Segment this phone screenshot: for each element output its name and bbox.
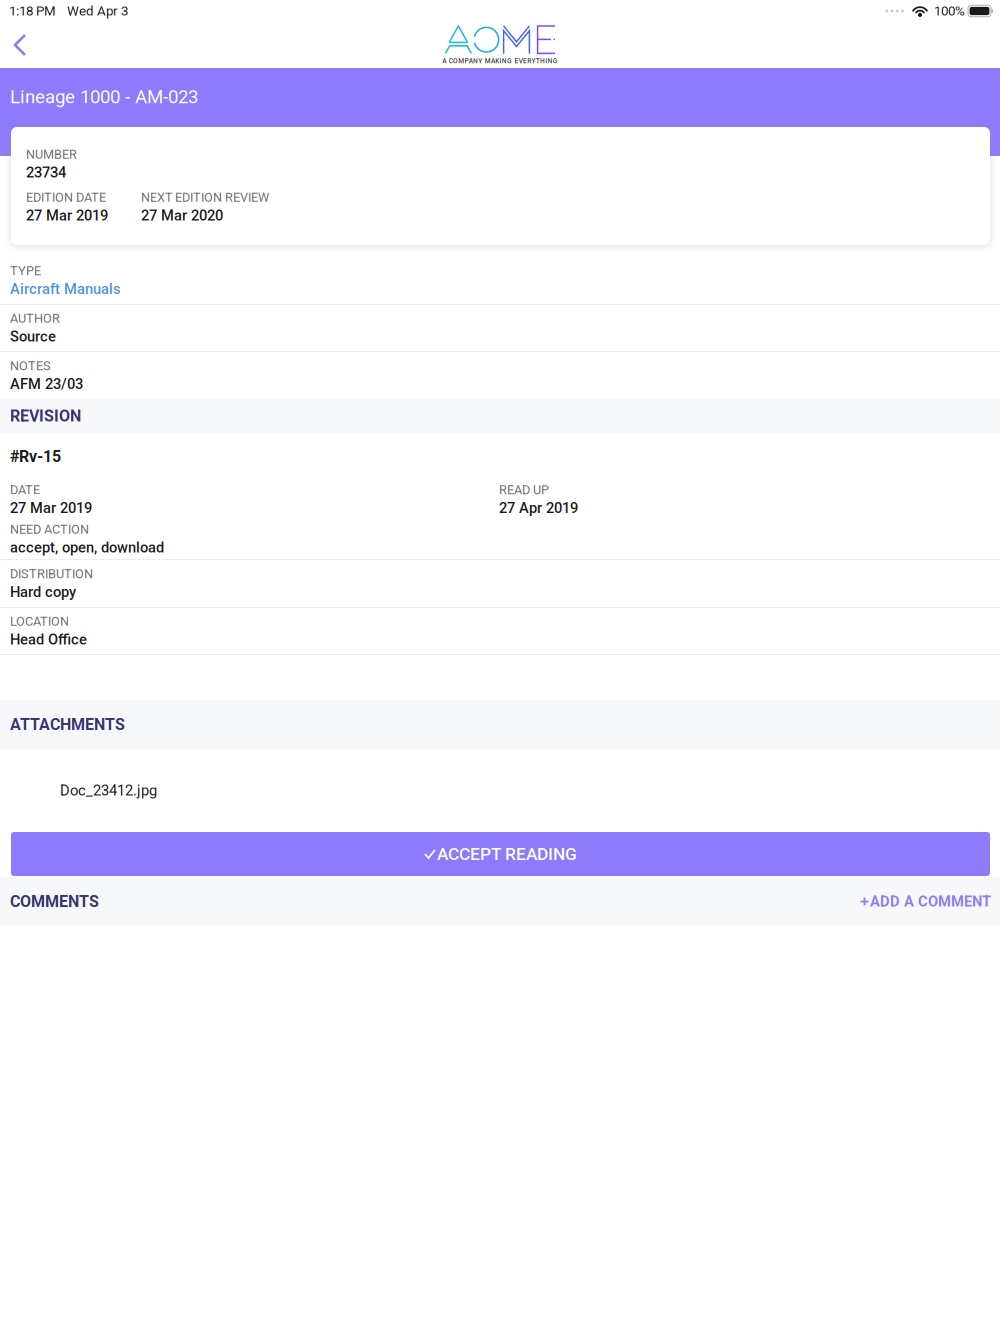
- staticText: DATE: [10, 482, 40, 497]
- staticText: COMMENTS: [10, 892, 99, 911]
- staticText: 27 Mar 2020: [141, 207, 223, 224]
- staticText: Aircraft Manuals: [10, 280, 121, 297]
- staticText: 1:18 PM: [9, 3, 56, 19]
- staticText: Doc_23412.jpg: [60, 782, 157, 799]
- staticText: 23734: [26, 164, 66, 181]
- staticText: Wed Apr 3: [67, 3, 128, 19]
- staticText: Source: [10, 328, 56, 345]
- staticText: TYPE: [10, 263, 41, 278]
- staticText: accept, open, download: [10, 539, 164, 556]
- staticText: NUMBER: [26, 147, 77, 162]
- button[interactable]: ACCEPT READING: [0, 832, 1000, 876]
- staticText: NOTES: [10, 358, 51, 373]
- staticText: AFM 23/03: [10, 375, 83, 392]
- staticText: 27 Mar 2019: [26, 207, 108, 224]
- staticText: NEED ACTION: [10, 522, 89, 537]
- staticText: ATTACHMENTS: [10, 715, 125, 734]
- staticText: EDITION DATE: [26, 190, 106, 205]
- staticText: Lineage 1000 - AM-023: [10, 86, 198, 108]
- staticText: ACCEPT READING: [437, 844, 577, 864]
- staticText: REVISION: [10, 407, 81, 425]
- staticText: READ UP: [499, 482, 549, 497]
- staticText: Head Office: [10, 631, 87, 648]
- staticText: 100%: [934, 3, 965, 19]
- staticText: 27 Apr 2019: [499, 499, 578, 516]
- staticText: #Rv-15: [10, 447, 61, 466]
- staticText: DISTRIBUTION: [10, 566, 93, 581]
- staticText: 27 Mar 2019: [10, 499, 92, 516]
- button[interactable]: Back: [0, 23, 40, 67]
- staticText: A COMPANY MAKING EVERYTHING: [442, 57, 558, 65]
- staticText: LOCATION: [10, 614, 69, 629]
- staticText: NEXT EDITION REVIEW: [141, 190, 269, 205]
- staticText: ADD A COMMENT: [870, 893, 991, 910]
- staticText: AUTHOR: [10, 311, 60, 326]
- staticText: Hard copy: [10, 583, 76, 600]
- button[interactable]: ADD A COMMENT: [859, 893, 991, 910]
